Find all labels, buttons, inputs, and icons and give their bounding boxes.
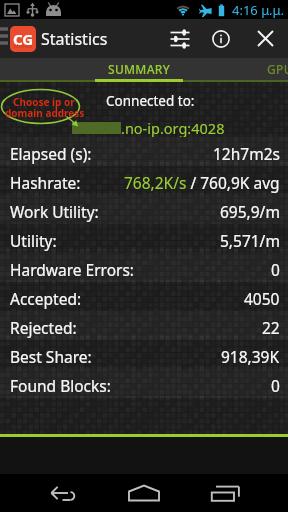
staticText: 695,9/m (220, 201, 280, 222)
staticText: Utility: (10, 230, 57, 251)
button[interactable]: Close (242, 19, 288, 58)
staticText: Rejected: (10, 317, 77, 338)
button[interactable]: GPU 0 (267, 58, 288, 82)
button[interactable]: Info (200, 19, 242, 58)
staticText: Hardware Errors: (10, 259, 135, 280)
button[interactable]: Hardware Errors: (0, 253, 288, 282)
button[interactable]: Settings (160, 19, 200, 58)
staticText: 768,2K/s / 760,9K avg (124, 172, 280, 193)
staticText: Elapsed (s): (10, 143, 92, 164)
button[interactable]: Hashrate: (0, 166, 288, 195)
staticText: 5,571/m (220, 230, 280, 251)
staticText: Statistics (41, 28, 108, 50)
staticText: 12h7m2s (213, 143, 280, 164)
staticText: SUMMARY (108, 61, 171, 77)
button[interactable]: CG (0, 19, 118, 58)
button[interactable]: Utility: (0, 224, 288, 253)
staticText: 0 (271, 259, 280, 280)
staticText: Hashrate: (10, 172, 81, 193)
staticText: 918,39K (221, 346, 280, 367)
button[interactable]: Elapsed (s): (0, 137, 288, 166)
button[interactable]: SUMMARY (95, 58, 183, 82)
staticText: domain address (5, 106, 85, 120)
staticText: Best Share: (10, 346, 92, 367)
button[interactable]: Accepted: (0, 282, 288, 311)
button[interactable]: Work Utility: (0, 195, 288, 224)
staticText: Choose ip or (13, 95, 75, 109)
staticText: Monitor (14, 43, 33, 50)
staticText: Accepted: (10, 288, 82, 309)
button[interactable]: Home (108, 474, 180, 512)
staticText: .no-ip.org:4028 (121, 118, 225, 138)
staticText: Connected to: (106, 92, 195, 110)
button[interactable]: Rejected: (0, 311, 288, 340)
staticText: CG (13, 29, 34, 49)
staticText: 4050 (244, 288, 280, 309)
staticText: Work Utility: (10, 201, 99, 222)
staticText: 0 (271, 375, 280, 396)
staticText: 22 (262, 317, 280, 338)
button[interactable]: Best Share: (0, 340, 288, 369)
staticText: GPU 0 (267, 61, 288, 77)
staticText: 4:16 μ.μ. (232, 1, 284, 19)
button[interactable]: Back (28, 474, 100, 512)
staticText: Found Blocks: (10, 375, 111, 396)
button[interactable]: Recent apps (188, 474, 268, 512)
button[interactable]: Found Blocks: (0, 369, 288, 398)
